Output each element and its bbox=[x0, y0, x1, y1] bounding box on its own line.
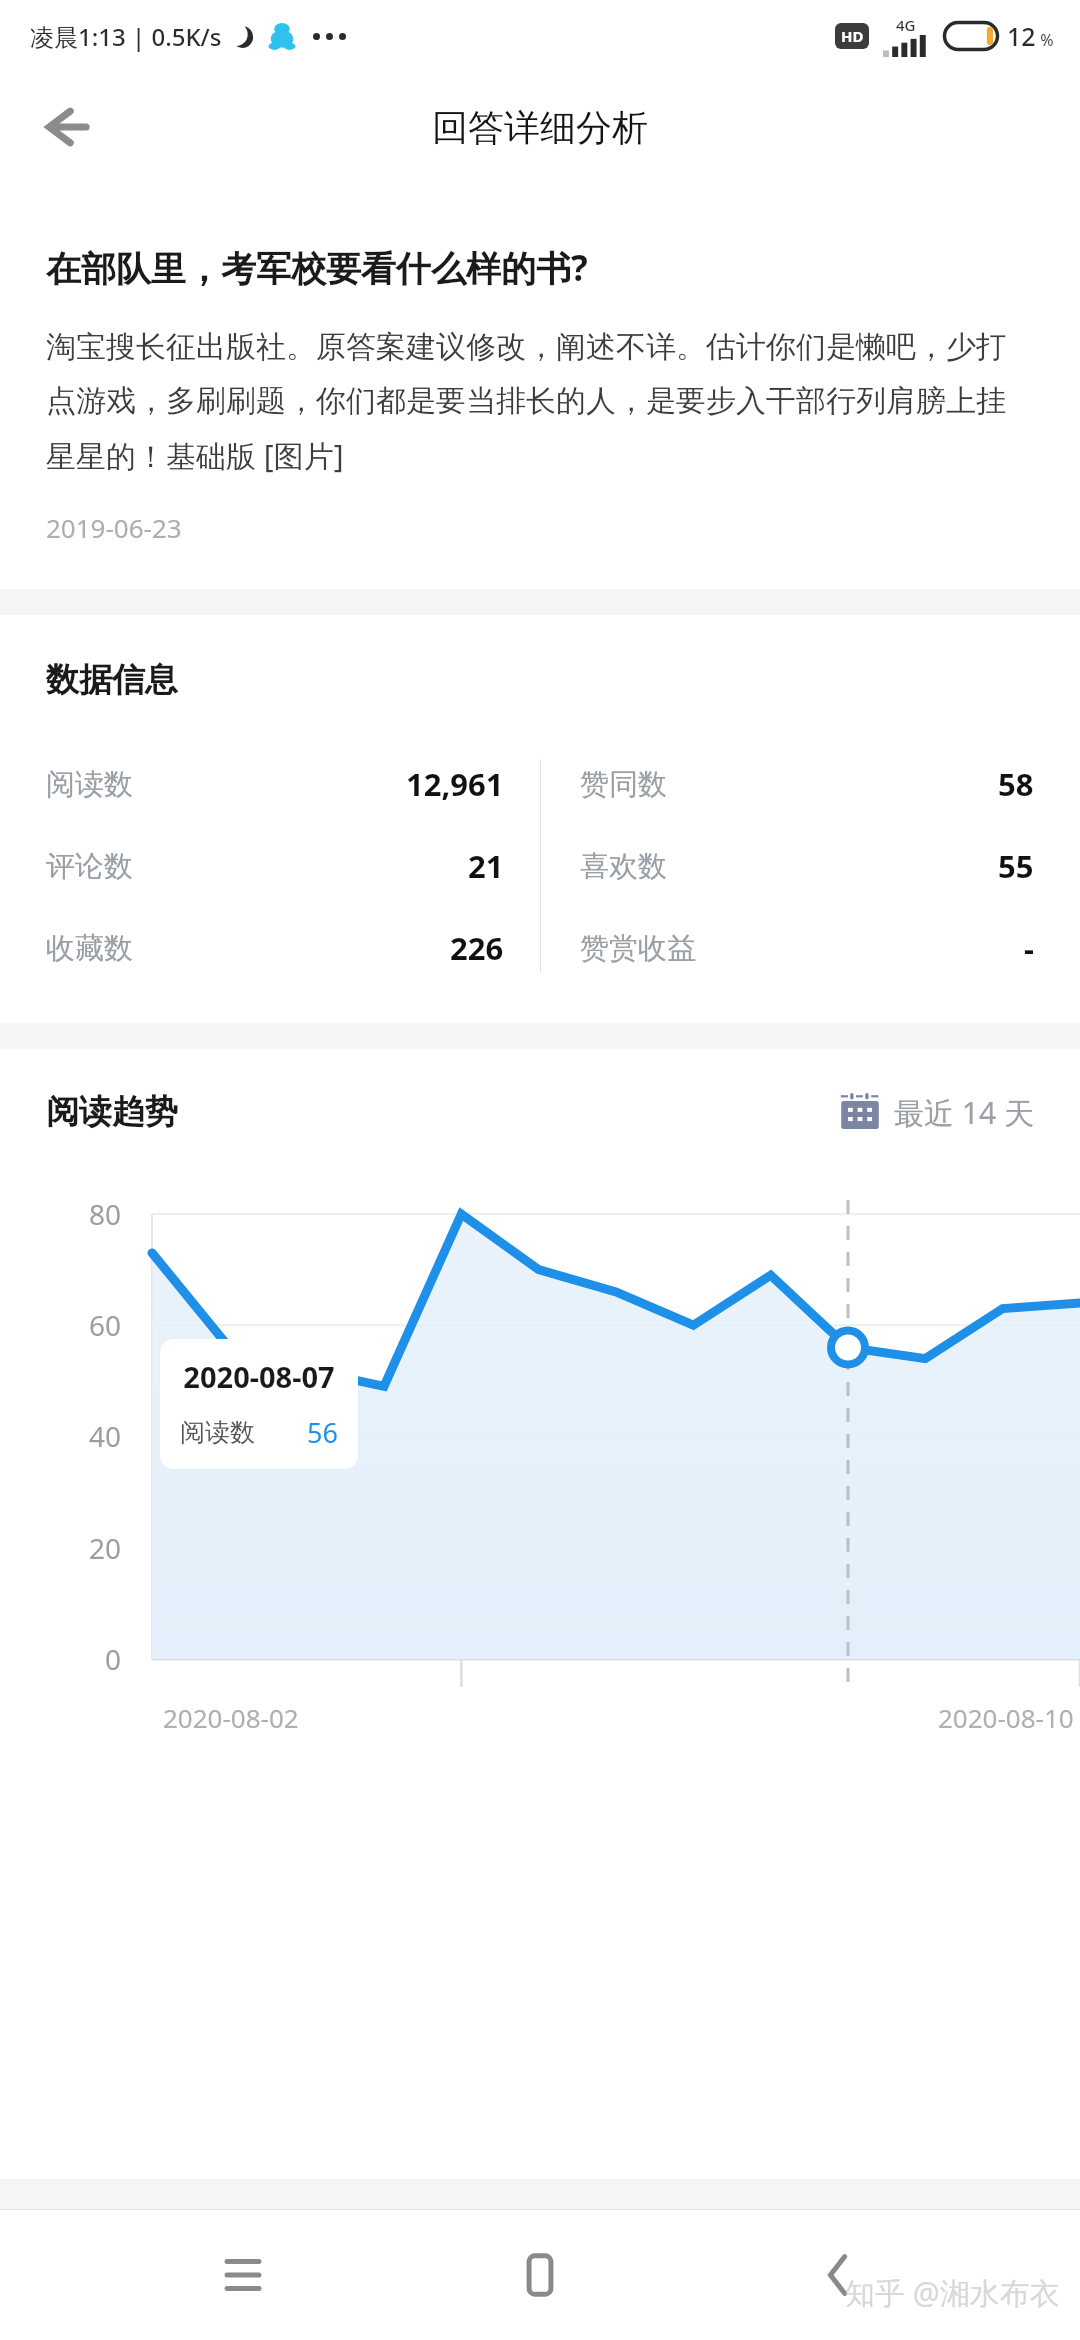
staticText: 赞同数 bbox=[580, 766, 667, 803]
staticText: % bbox=[1036, 29, 1054, 51]
staticText: 12 bbox=[1007, 19, 1036, 53]
staticText: 226 bbox=[450, 927, 504, 969]
staticText: 40 bbox=[89, 1417, 122, 1455]
staticText: 2019-06-23 bbox=[46, 510, 182, 545]
staticText: 最近 14 天 bbox=[894, 1092, 1034, 1133]
staticText: 收藏数 bbox=[46, 930, 133, 967]
staticText: 21 bbox=[468, 845, 504, 887]
staticText: 55 bbox=[998, 845, 1034, 887]
staticText: 12,961 bbox=[406, 763, 504, 805]
staticText: HD bbox=[841, 26, 864, 46]
staticText: 60 bbox=[89, 1306, 122, 1344]
button[interactable]: 最近 14 天 bbox=[840, 1092, 1034, 1133]
staticText: 58 bbox=[998, 763, 1034, 805]
staticText: 回答详细分析 bbox=[432, 105, 648, 150]
button[interactable]: Back bbox=[783, 2220, 893, 2330]
staticText: 淘宝搜长征出版社。原答案建议修改，阐述不详。估计你们是懒吧，少打点游戏，多刷刷题… bbox=[46, 328, 1034, 476]
staticText: 评论数 bbox=[46, 848, 133, 885]
staticText: 喜欢数 bbox=[580, 848, 667, 885]
staticText: 数据信息 bbox=[46, 659, 178, 701]
staticText: 2020-08-02 bbox=[163, 1700, 299, 1735]
button[interactable]: Back bbox=[26, 88, 104, 166]
staticText: 阅读数 bbox=[180, 1417, 255, 1448]
staticText: 知乎 @湘水布衣 bbox=[845, 2272, 1060, 2313]
staticText: - bbox=[1024, 927, 1034, 969]
staticText: 0 bbox=[105, 1640, 122, 1678]
staticText: 2020-08-07 bbox=[180, 1357, 338, 1396]
staticText: 20 bbox=[89, 1529, 122, 1567]
button[interactable]: Home bbox=[485, 2220, 595, 2330]
staticText: 80 bbox=[89, 1195, 122, 1233]
staticText: 2020-08-10 bbox=[938, 1700, 1074, 1735]
staticText: 4G bbox=[896, 15, 916, 35]
button[interactable]: Recent apps bbox=[188, 2220, 298, 2330]
staticText: 在部队里，考军校要看什么样的书? bbox=[46, 244, 588, 292]
button[interactable]: 2020-08-07 bbox=[160, 1339, 358, 1469]
staticText: 凌晨1:13 | 0.5K/s bbox=[30, 20, 222, 53]
staticText: 赞赏收益 bbox=[580, 930, 696, 967]
staticText: 阅读数 bbox=[46, 766, 133, 803]
staticText: 56 bbox=[307, 1414, 338, 1451]
staticText: 阅读趋势 bbox=[46, 1091, 178, 1133]
